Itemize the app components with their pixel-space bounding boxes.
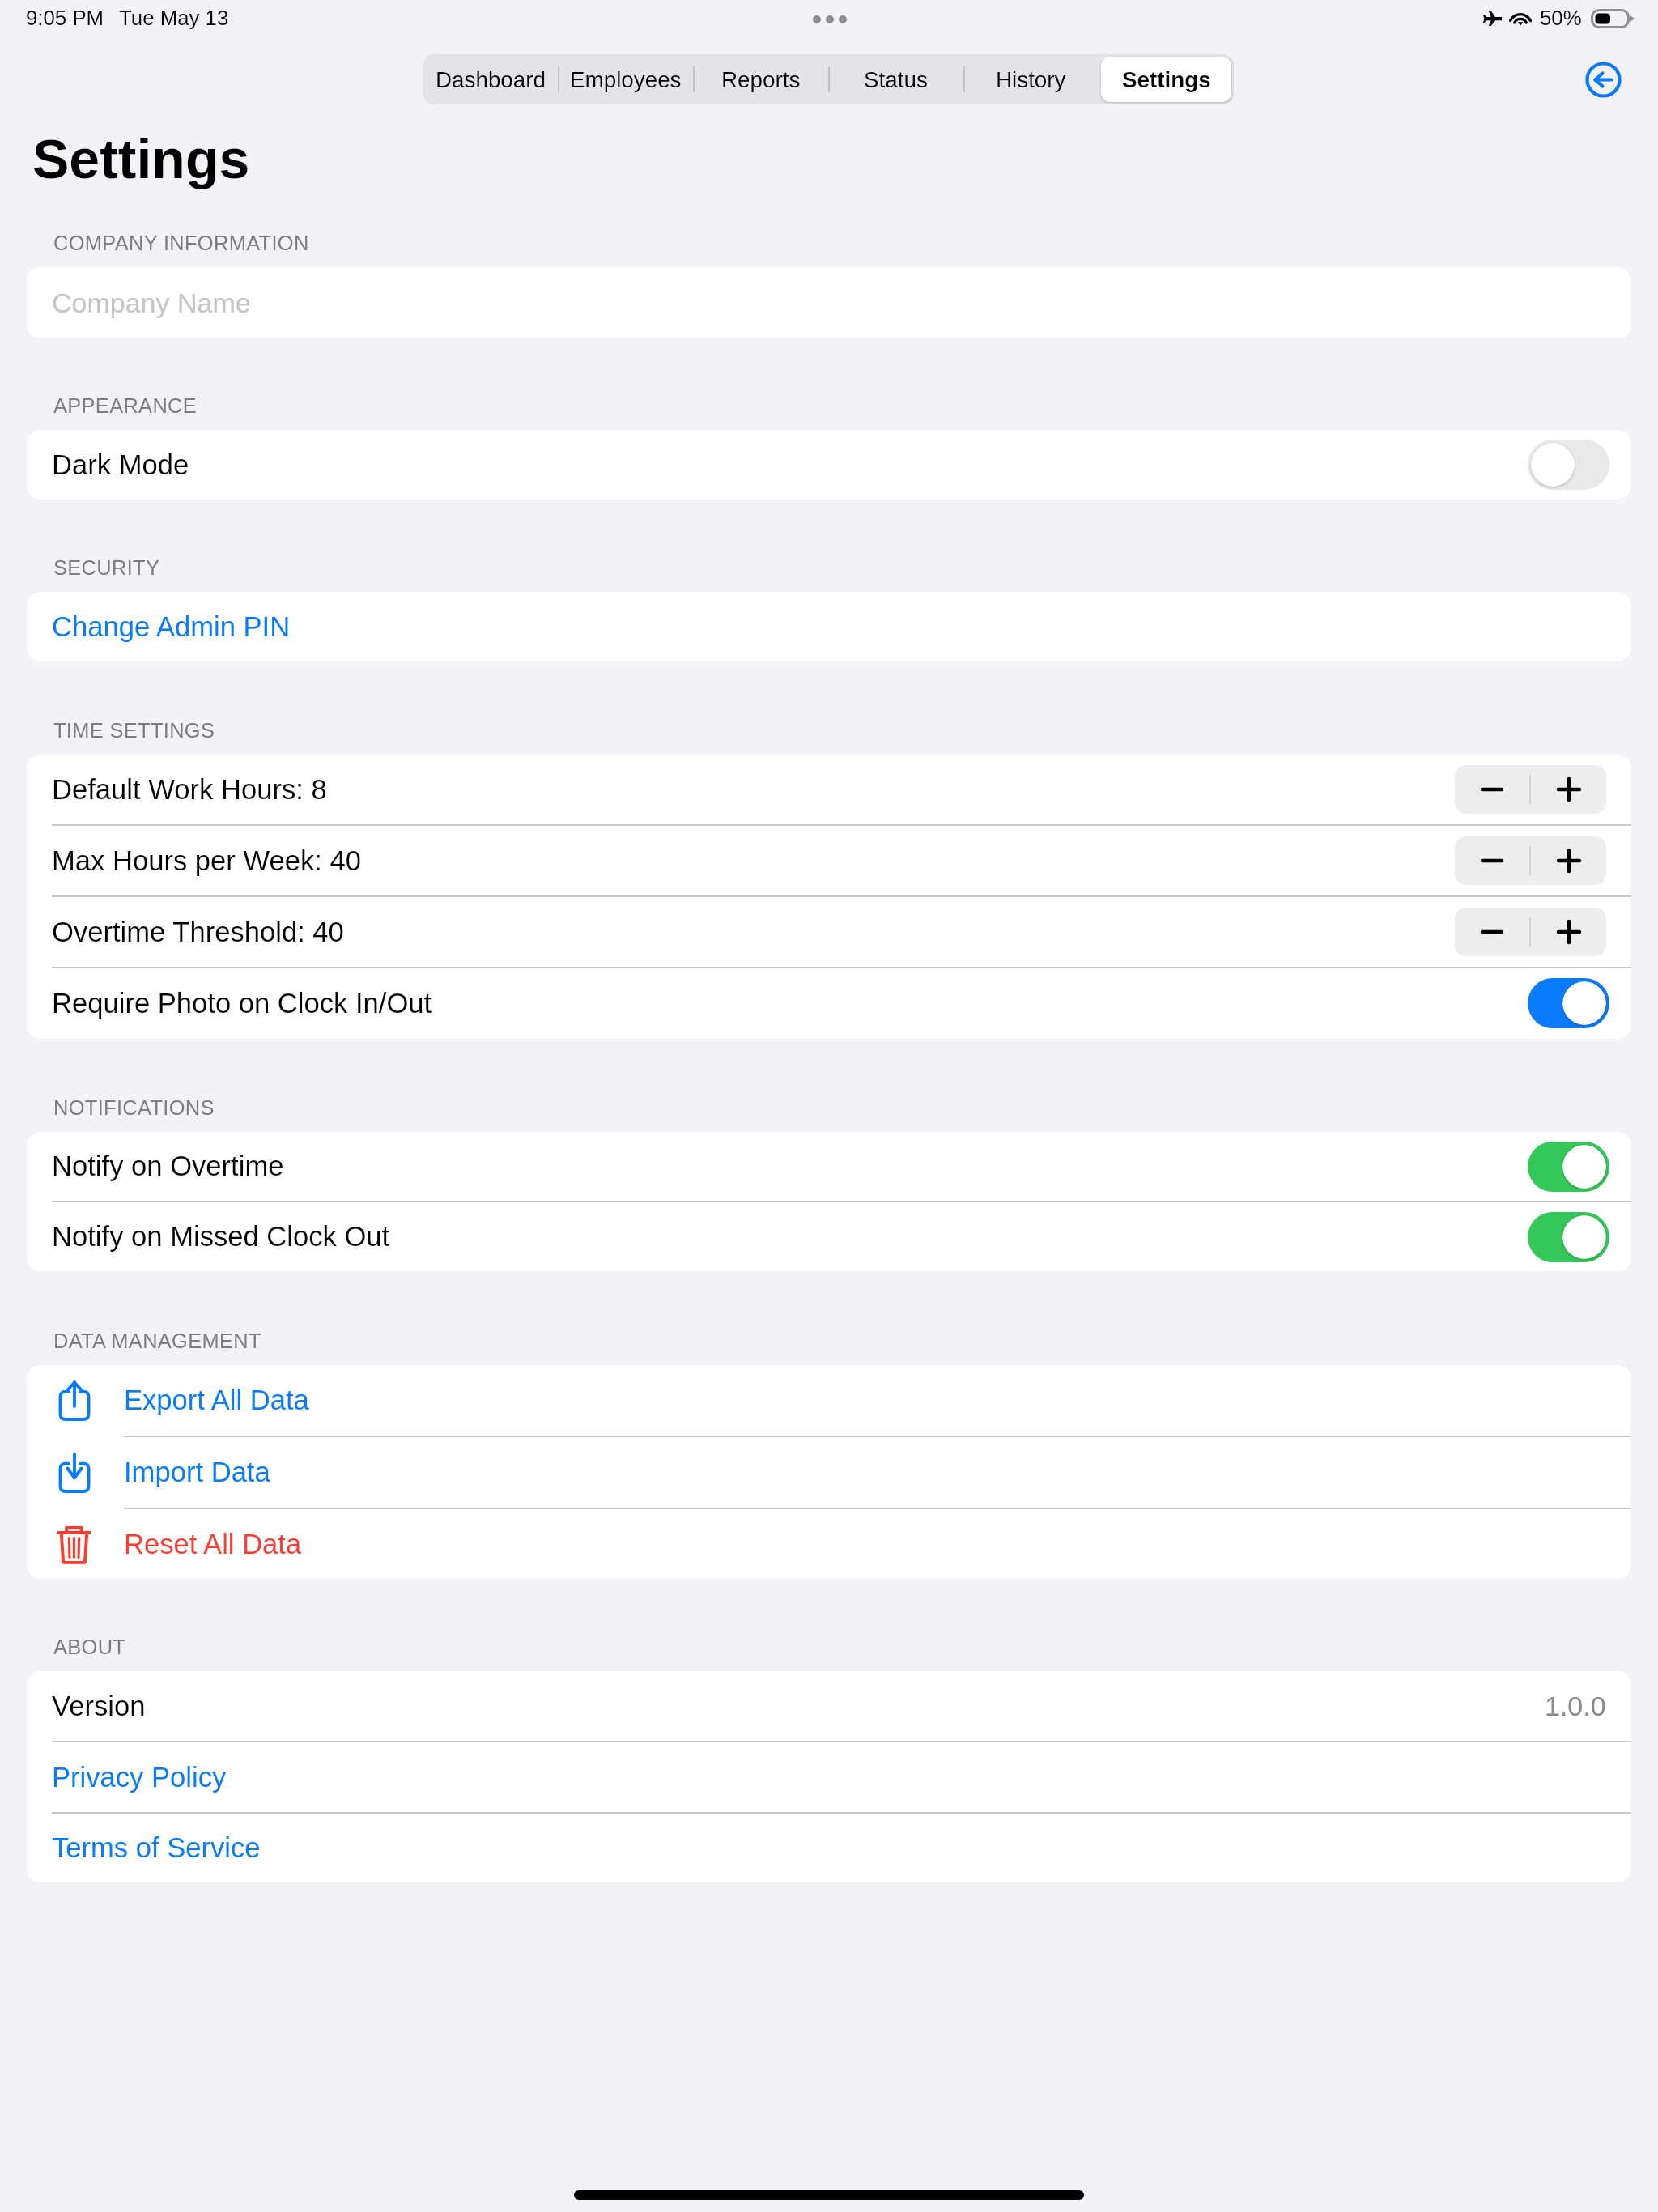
staticText: Notify on Missed Clock Out [52, 1221, 390, 1253]
button[interactable]: Increase [1531, 765, 1606, 814]
button[interactable]: Increase [1531, 908, 1606, 956]
staticText: Settings [1122, 67, 1211, 92]
staticText: Company Name [52, 287, 251, 318]
staticText: 9:05 PM [26, 6, 104, 30]
staticText: TIME SETTINGS [53, 719, 215, 742]
button[interactable]: Import Data [27, 1437, 1631, 1508]
staticText: COMPANY INFORMATION [53, 232, 309, 254]
staticText: Import Data [124, 1457, 270, 1488]
staticText: SECURITY [53, 556, 160, 579]
button[interactable]: Employees [558, 54, 693, 104]
staticText: Terms of Service [52, 1832, 261, 1864]
staticText: Default Work Hours: 8 [52, 774, 327, 806]
button[interactable]: Require Photo on Clock In/Out [27, 968, 1631, 1038]
button[interactable]: Decrease [1455, 908, 1529, 956]
staticText: Overtime Threshold: 40 [52, 917, 344, 948]
button[interactable]: Terms of Service [27, 1814, 1631, 1882]
button[interactable]: Back [1582, 58, 1624, 100]
staticText: Dashboard [436, 67, 546, 92]
button[interactable]: Settings [1101, 57, 1231, 102]
button[interactable]: Dark Mode [27, 430, 1631, 500]
staticText: Dark Mode [52, 449, 189, 481]
button[interactable]: Default Work Hours: 8 [27, 755, 1631, 824]
button[interactable]: Decrease [1455, 765, 1529, 814]
staticText: Settings [32, 128, 250, 189]
staticText: DATA MANAGEMENT [53, 1329, 261, 1352]
button[interactable]: Notify on Missed Clock Out [27, 1202, 1631, 1271]
button[interactable]: Max Hours per Week: 40 [27, 826, 1631, 895]
button[interactable]: Overtime Threshold: 40 [27, 897, 1631, 967]
button[interactable]: Company Name [27, 267, 1631, 338]
button[interactable]: Decrease [1455, 836, 1529, 885]
staticText: Notify on Overtime [52, 1151, 284, 1182]
staticText: Tue May 13 [119, 6, 229, 30]
staticText: Reset All Data [124, 1529, 302, 1560]
staticText: Status [864, 67, 928, 92]
button[interactable]: On [1528, 1212, 1609, 1262]
staticText: 50% [1540, 6, 1582, 30]
button[interactable]: Off [1528, 440, 1609, 490]
staticText: Employees [570, 67, 682, 92]
button[interactable]: History [963, 54, 1099, 104]
staticText: Change Admin PIN [52, 611, 291, 643]
button[interactable]: Privacy Policy [27, 1742, 1631, 1812]
button[interactable]: Export All Data [27, 1365, 1631, 1436]
button[interactable]: Dashboard [423, 54, 558, 104]
staticText: APPEARANCE [53, 394, 198, 417]
staticText: Reports [721, 67, 801, 92]
staticText: ABOUT [53, 1636, 126, 1658]
staticText: Require Photo on Clock In/Out [52, 988, 432, 1019]
staticText: Version [52, 1691, 146, 1722]
staticText: Export All Data [124, 1385, 309, 1416]
button[interactable]: Notify on Overtime [27, 1132, 1631, 1201]
staticText: NOTIFICATIONS [53, 1096, 215, 1119]
button[interactable]: On [1528, 978, 1609, 1028]
button[interactable]: Reset All Data [27, 1509, 1631, 1579]
button[interactable]: Status [828, 54, 963, 104]
button[interactable]: Increase [1531, 836, 1606, 885]
button[interactable]: Version [27, 1671, 1631, 1741]
staticText: Privacy Policy [52, 1762, 227, 1793]
button[interactable]: Change Admin PIN [27, 592, 1631, 661]
staticText: Max Hours per Week: 40 [52, 845, 361, 877]
button[interactable]: On [1528, 1142, 1609, 1192]
button[interactable]: Reports [693, 54, 828, 104]
staticText: History [996, 67, 1066, 92]
staticText: 1.0.0 [1545, 1691, 1606, 1721]
